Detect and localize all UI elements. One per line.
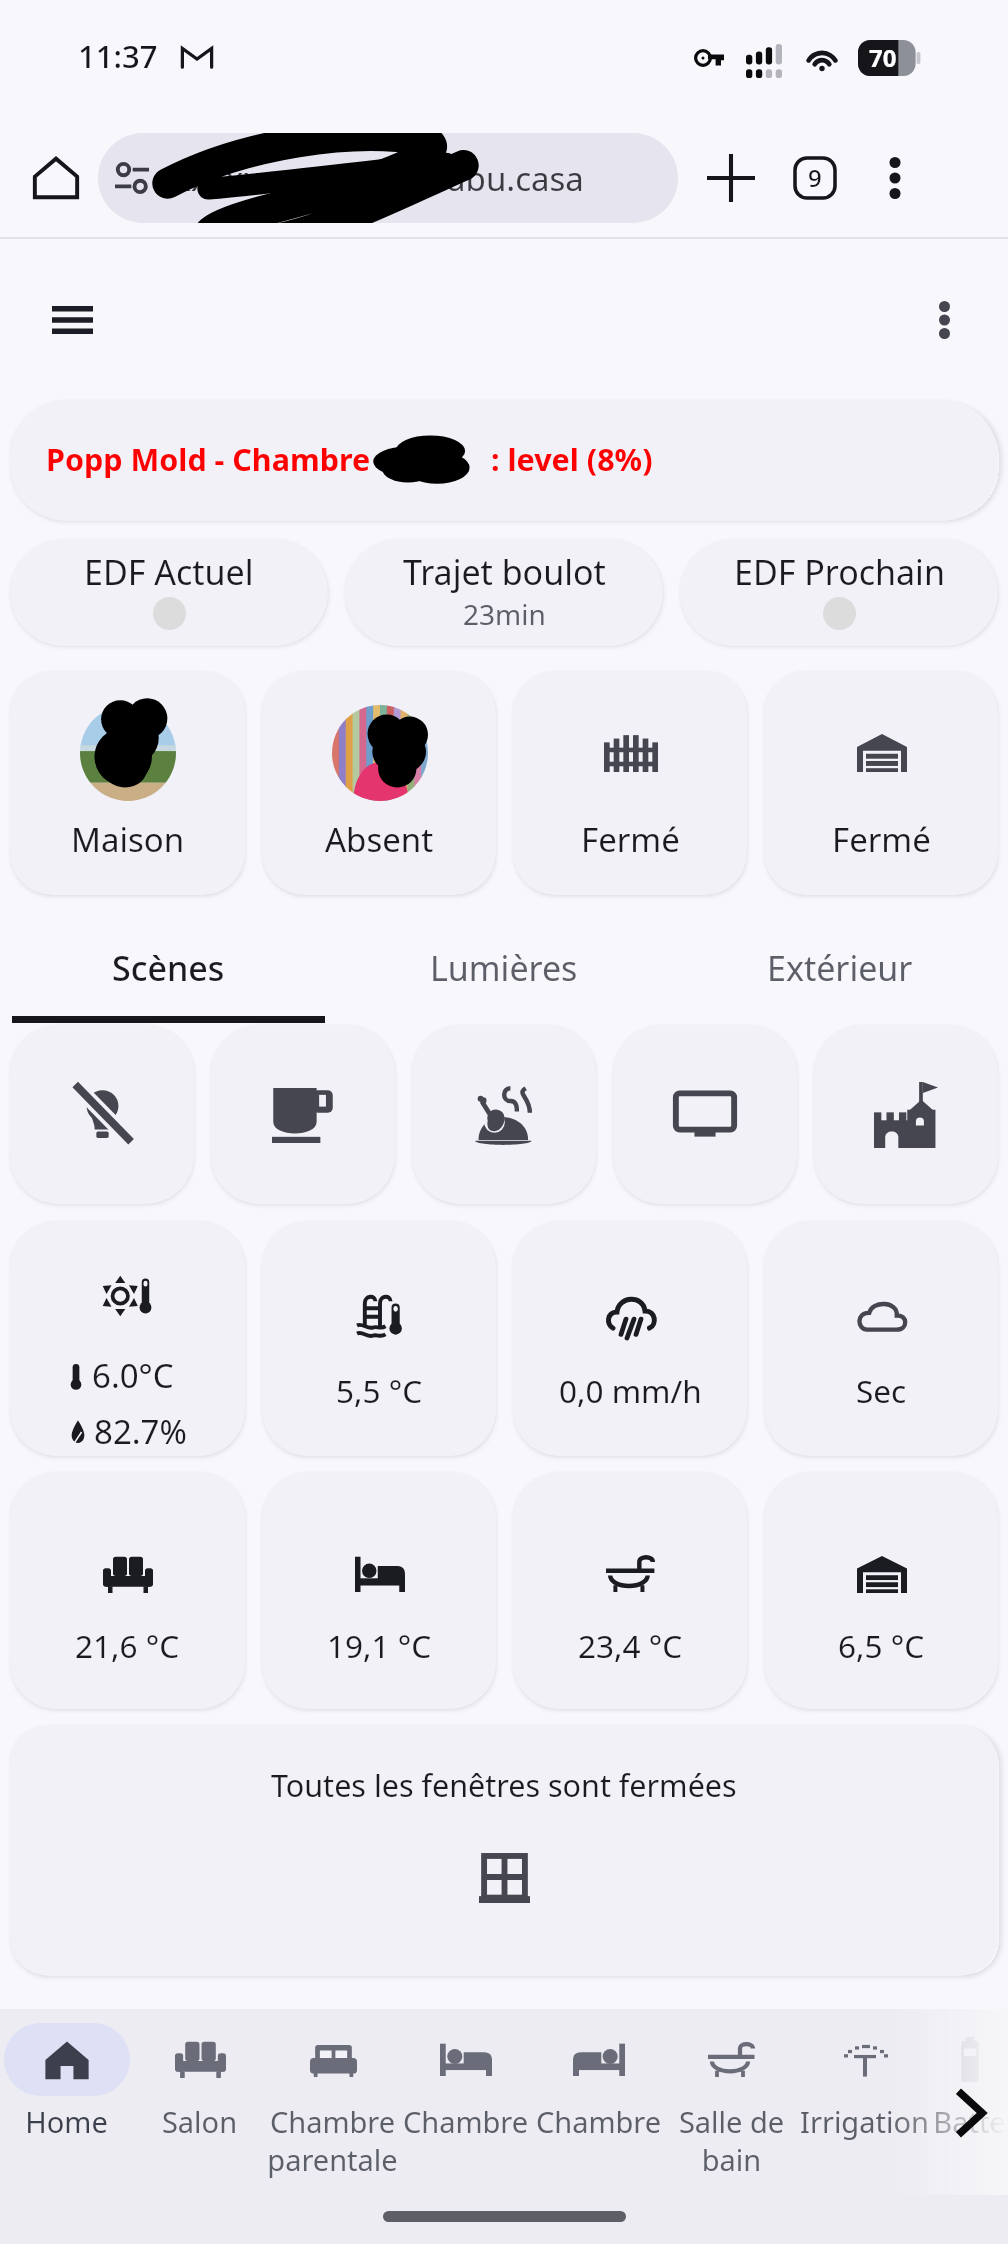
button[interactable]: Toutes les fenêtres sont fermées xyxy=(10,1725,998,1976)
button[interactable]: 19,1 °C xyxy=(262,1472,496,1709)
staticText: 5,5 °C xyxy=(336,1369,423,1412)
staticText: Fermé xyxy=(832,817,931,862)
button[interactable]: 6.0°C xyxy=(10,1221,245,1456)
staticText: Home xyxy=(0,2102,133,2141)
button[interactable]: Open menu xyxy=(26,274,118,366)
button[interactable] xyxy=(412,1025,596,1204)
button[interactable]: Fermé xyxy=(513,671,747,895)
staticText: Extérieur xyxy=(767,945,913,991)
button[interactable]: Scènes xyxy=(0,905,336,1025)
staticText: : level (8%) xyxy=(491,438,653,480)
staticText: Chambre parentale xyxy=(266,2102,399,2179)
staticText: Chambre xyxy=(532,2102,665,2141)
button[interactable]: 0,0 mm/h xyxy=(513,1221,747,1456)
staticText: Chambre xyxy=(399,2102,532,2141)
staticText: Irrigation xyxy=(798,2102,931,2141)
button[interactable]: EDF Actuel xyxy=(10,539,328,646)
button[interactable]: EDF Prochain xyxy=(680,539,998,646)
staticText: 6.0°C xyxy=(92,1353,174,1398)
button[interactable]: Fermé xyxy=(764,671,998,895)
button[interactable]: Chambre parentale xyxy=(266,2009,399,2195)
staticText: EDF Actuel xyxy=(84,549,254,595)
staticText: 9 xyxy=(808,161,822,194)
button[interactable]: 23,4 °C xyxy=(513,1472,747,1709)
staticText: Maison xyxy=(71,817,185,862)
button[interactable]: More options xyxy=(858,141,932,215)
staticText: Salon xyxy=(133,2102,266,2141)
button[interactable]: Home xyxy=(0,2009,133,2195)
button[interactable]: Batterie xyxy=(931,2009,1008,2195)
staticText: 82.7% xyxy=(94,1409,187,1454)
staticText: Sec xyxy=(856,1369,907,1412)
button[interactable]: New tab xyxy=(692,139,770,217)
staticText: Trajet boulot xyxy=(403,549,606,595)
button[interactable]: Chambre xyxy=(532,2009,665,2195)
button[interactable]: Salon xyxy=(133,2009,266,2195)
staticText: 23,4 °C xyxy=(578,1624,683,1667)
button[interactable] xyxy=(211,1025,395,1204)
staticText: 0,0 mm/h xyxy=(559,1369,702,1412)
button[interactable]: Home page xyxy=(20,142,92,214)
staticText: Popp Mold - Chambre xyxy=(46,438,379,480)
staticText: Salle de bain xyxy=(665,2102,798,2179)
button[interactable]: 21,6 °C xyxy=(10,1472,245,1709)
button[interactable] xyxy=(613,1025,797,1204)
button[interactable] xyxy=(814,1025,998,1204)
staticText: Toutes les fenêtres sont fermées xyxy=(271,1764,737,1806)
button[interactable]: Maison xyxy=(10,671,245,895)
staticText: 6,5 °C xyxy=(838,1624,925,1667)
button[interactable] xyxy=(10,1025,194,1204)
staticText: Batterie xyxy=(931,2102,1008,2141)
staticText: 70 xyxy=(869,41,897,74)
button[interactable]: 6,5 °C xyxy=(764,1472,998,1709)
button[interactable]: Scroll tabs right xyxy=(940,2083,1000,2143)
button[interactable]: Popp Mold - Chambre xyxy=(10,400,998,521)
button[interactable]: Chambre xyxy=(399,2009,532,2195)
staticText: 21,6 °C xyxy=(75,1624,180,1667)
staticText: 19,1 °C xyxy=(327,1624,432,1667)
button[interactable]: Salle de bain xyxy=(665,2009,798,2195)
staticText: Fermé xyxy=(581,817,680,862)
staticText: 11:37 xyxy=(78,35,158,77)
staticText: EDF Prochain xyxy=(734,549,945,595)
staticText: Absent xyxy=(325,817,434,862)
staticText: Scènes xyxy=(112,945,225,991)
button[interactable]: Assist menu xyxy=(900,276,988,364)
button[interactable]: Switch tabs xyxy=(776,139,854,217)
button[interactable]: Lumières xyxy=(336,905,672,1025)
button[interactable]: 5,5 °C xyxy=(262,1221,496,1456)
button[interactable]: Irrigation xyxy=(798,2009,931,2195)
button[interactable]: Extérieur xyxy=(672,905,1008,1025)
staticText: xxxxxxxxxxxxxxx.nabu.casa xyxy=(156,156,584,201)
staticText: Lumières xyxy=(430,945,578,991)
staticText: 23min xyxy=(463,595,546,633)
button[interactable]: Sec xyxy=(764,1221,998,1456)
button[interactable]: Trajet boulot xyxy=(345,539,663,646)
button[interactable]: Absent xyxy=(262,671,496,895)
button[interactable]: xxxxxxxxxxxxxxx.nabu.casa xyxy=(98,133,678,223)
